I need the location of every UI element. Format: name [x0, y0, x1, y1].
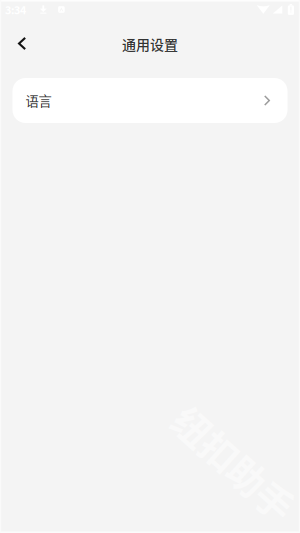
staticText: 语言: [25, 91, 51, 110]
staticText: 3:34: [5, 2, 26, 17]
button[interactable]: Back: [0, 25, 44, 61]
staticText: 通用设置: [122, 34, 178, 54]
button[interactable]: 语言: [12, 78, 287, 123]
